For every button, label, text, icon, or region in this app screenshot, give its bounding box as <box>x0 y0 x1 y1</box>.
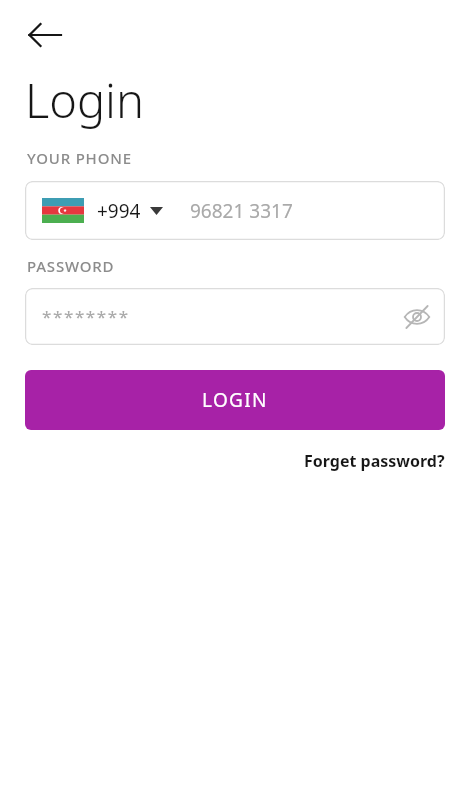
button[interactable]: Back <box>20 10 70 60</box>
staticText: PASSWORD <box>27 256 115 276</box>
staticText: +994 <box>97 198 141 224</box>
button[interactable]: ******** <box>25 288 445 345</box>
button[interactable]: LOGIN <box>25 370 445 430</box>
staticText: YOUR PHONE <box>27 148 132 168</box>
staticText: Login <box>25 68 144 132</box>
staticText: LOGIN <box>202 387 268 413</box>
button[interactable]: Show password <box>394 294 440 340</box>
button[interactable]: Select country code <box>25 181 173 240</box>
button[interactable]: Forget password? <box>294 444 470 480</box>
staticText: ******** <box>42 305 130 328</box>
staticText: 96821 3317 <box>190 198 293 224</box>
staticText: Forget password? <box>304 450 445 472</box>
